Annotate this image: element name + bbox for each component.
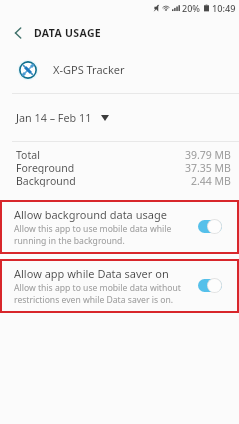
staticText: 20% (182, 2, 200, 14)
staticText: restrictions even while Data saver is on… (14, 294, 174, 306)
staticText: Jan 14 – Feb 11 (16, 110, 92, 125)
staticText: running in the background. (14, 235, 125, 247)
staticText: 37.35 MB (185, 161, 231, 174)
staticText: 2.44 MB (191, 174, 231, 187)
button[interactable]: Jan 14 – Feb 11 (0, 94, 239, 141)
staticText: DATA USAGE (34, 26, 102, 40)
staticText: Allow app while Data saver on (14, 266, 169, 281)
staticText: Allow this app to use mobile data withou… (14, 282, 181, 294)
staticText: Background (16, 174, 76, 187)
staticText: Allow background data usage (14, 207, 167, 222)
staticText: X-GPS Tracker (53, 62, 125, 77)
button[interactable]: X-GPS Tracker (0, 52, 239, 87)
button[interactable]: Allow background data usage (0, 200, 239, 254)
staticText: Allow this app to use mobile data while (14, 223, 172, 235)
staticText: 39.79 MB (185, 148, 231, 161)
button[interactable]: Toggle allow (196, 218, 222, 235)
button[interactable]: Allow app while Data saver on (0, 259, 239, 313)
staticText: 10:49 (212, 2, 236, 15)
button[interactable]: Back (0, 19, 34, 46)
staticText: Foreground (16, 161, 75, 174)
button[interactable]: Toggle allow (196, 277, 222, 294)
staticText: Total (16, 148, 40, 161)
